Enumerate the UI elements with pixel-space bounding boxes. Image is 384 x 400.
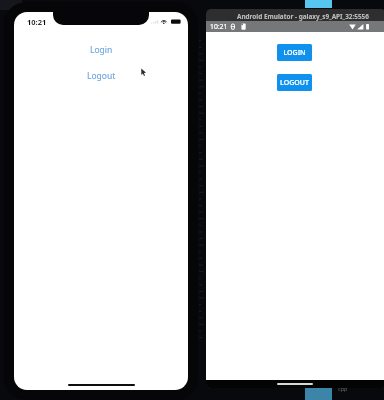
button[interactable]: LOGIN bbox=[277, 44, 312, 61]
staticText: Login bbox=[90, 44, 113, 56]
button[interactable]: LOGOUT bbox=[277, 74, 312, 91]
staticText: cpp bbox=[338, 385, 348, 392]
staticText: Android Emulator - galaxy_s9_API_32:5556 bbox=[237, 12, 369, 21]
button[interactable]: Logout bbox=[79, 67, 124, 85]
staticText: 10:21 bbox=[210, 22, 228, 31]
staticText: LOGOUT bbox=[280, 78, 309, 88]
button[interactable]: Login bbox=[82, 41, 121, 59]
staticText: LOGIN bbox=[283, 48, 306, 58]
staticText: Logout bbox=[87, 70, 116, 82]
staticText: 10:21 bbox=[27, 17, 47, 27]
